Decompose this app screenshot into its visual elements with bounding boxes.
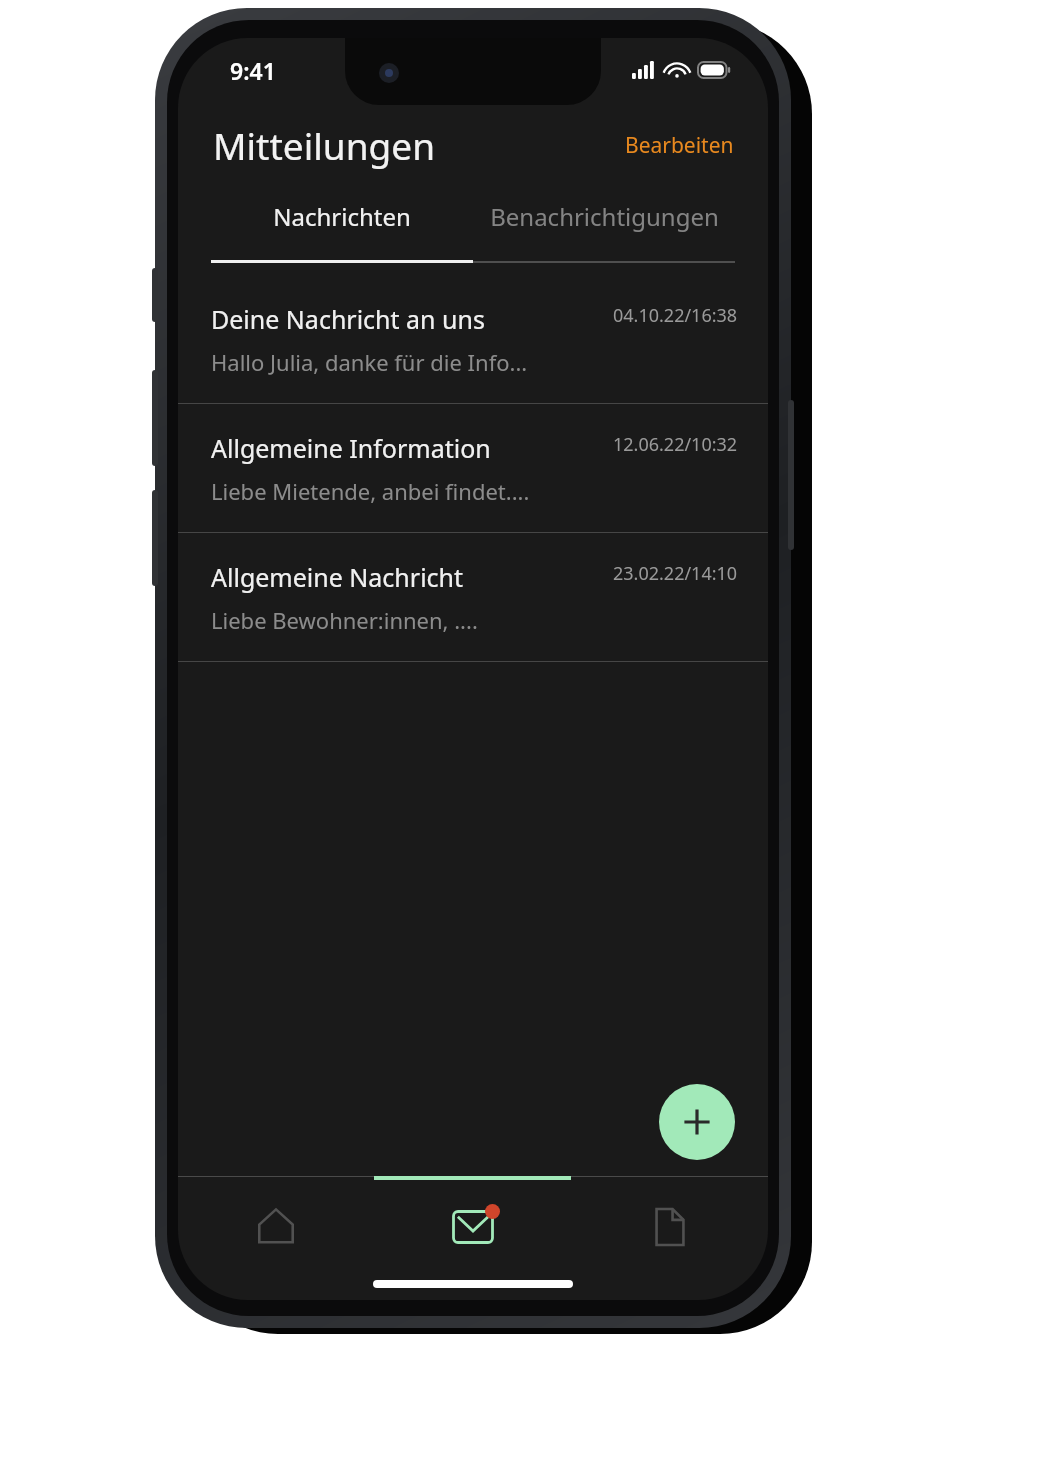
button[interactable]: Allgemeine Information <box>178 404 768 532</box>
staticText: Mitteilungen <box>213 120 435 170</box>
staticText: Deine Nachricht an uns <box>211 302 485 336</box>
staticText: 04.10.22/16:38 <box>613 303 738 328</box>
button[interactable]: Mitteilungen <box>374 1194 571 1260</box>
button[interactable]: Neue Nachricht <box>659 1084 735 1160</box>
staticText: Hallo Julia, danke für die Info... <box>211 347 528 377</box>
staticText: Liebe Bewohner:innen, .... <box>211 605 478 635</box>
staticText: 23.02.22/14:10 <box>613 561 738 586</box>
button[interactable]: Benachrichtigungen <box>473 192 735 241</box>
staticText: Allgemeine Information <box>211 431 491 465</box>
staticText: Bearbeiten <box>625 131 734 160</box>
staticText: Allgemeine Nachricht <box>211 560 464 594</box>
staticText: Benachrichtigungen <box>490 200 719 233</box>
staticText: Nachrichten <box>273 200 411 233</box>
button[interactable]: Dokumente <box>571 1194 768 1260</box>
button[interactable]: Bearbeiten <box>621 125 738 166</box>
staticText: Liebe Mietende, anbei findet.... <box>211 476 530 506</box>
staticText: 12.06.22/10:32 <box>613 432 738 457</box>
button[interactable]: Nachrichten <box>211 192 473 241</box>
staticText: 9:41 <box>230 55 276 86</box>
button[interactable]: Allgemeine Nachricht <box>178 533 768 661</box>
button[interactable]: Start <box>178 1194 374 1260</box>
button[interactable]: Deine Nachricht an uns <box>178 275 768 403</box>
